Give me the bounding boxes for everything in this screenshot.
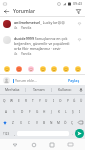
staticText: N xyxy=(50,121,53,125)
staticText: V xyxy=(36,121,38,125)
button[interactable]: B xyxy=(41,117,48,128)
button[interactable]: G xyxy=(34,106,41,117)
staticText: Y xyxy=(39,99,41,103)
button[interactable]: Like xyxy=(76,36,82,42)
button[interactable]: F xyxy=(26,106,34,117)
button[interactable]: Z xyxy=(9,117,17,128)
button[interactable]: Share xyxy=(75,8,82,15)
staticText: I xyxy=(53,99,55,103)
button[interactable]: I xyxy=(50,95,57,106)
button[interactable]: ?123 xyxy=(1,129,11,138)
button[interactable]: Ö xyxy=(62,117,69,128)
button[interactable]: Back xyxy=(3,8,10,15)
staticText: I xyxy=(79,110,81,114)
staticText: Ş xyxy=(72,110,74,114)
staticText: F xyxy=(29,110,31,114)
button[interactable]: Comma xyxy=(11,129,17,138)
staticText: Yorumlar xyxy=(13,8,36,15)
button[interactable] xyxy=(15,65,23,73)
staticText: L xyxy=(65,110,67,114)
button[interactable]: C xyxy=(25,117,33,128)
button[interactable]: H xyxy=(41,106,48,117)
staticText: ?123 xyxy=(3,132,10,136)
button[interactable]: J xyxy=(48,106,55,117)
button[interactable]: M xyxy=(55,117,62,128)
button[interactable] xyxy=(27,65,35,73)
staticText: Kullanıcı xyxy=(58,87,72,92)
staticText: P xyxy=(67,99,69,103)
button[interactable]: Ç xyxy=(69,117,76,128)
button[interactable]: Q xyxy=(0,95,8,106)
button[interactable]: anilmehmetsel_ Lucky be😍😍 xyxy=(0,17,85,33)
button[interactable]: V xyxy=(33,117,41,128)
button[interactable]: L xyxy=(62,106,69,117)
button[interactable]: Y xyxy=(36,95,43,106)
button[interactable]: X xyxy=(17,117,25,128)
button[interactable] xyxy=(3,65,11,73)
button[interactable]: Tamam xyxy=(26,85,51,94)
button[interactable]: S xyxy=(10,106,18,117)
button[interactable]: Paylaş xyxy=(66,77,82,84)
staticText: D xyxy=(21,110,24,114)
staticText: O xyxy=(59,99,62,103)
staticText: Yanıtla xyxy=(21,26,32,30)
staticText: U xyxy=(45,99,48,103)
staticText: R xyxy=(25,99,27,103)
button[interactable]: Keyboard xyxy=(66,140,75,149)
staticText: . xyxy=(72,131,73,136)
button[interactable]: W xyxy=(8,95,15,106)
button[interactable]: Voice input xyxy=(77,85,85,94)
button[interactable]: I xyxy=(76,106,83,117)
staticText: C xyxy=(28,121,31,125)
button[interactable]: A xyxy=(2,106,10,117)
button[interactable]: Back xyxy=(10,140,19,149)
button[interactable]: Shift xyxy=(0,117,9,128)
button[interactable]: Ü xyxy=(78,95,85,106)
staticText: anilmehmetsel_ Lucky be😍😍 xyxy=(14,20,65,25)
button[interactable]: R xyxy=(22,95,29,106)
staticText: , xyxy=(14,131,15,136)
staticText: Ğ xyxy=(73,99,76,103)
button[interactable] xyxy=(39,65,47,73)
button[interactable]: Merhaba xyxy=(0,85,25,94)
staticText: X xyxy=(20,121,22,125)
button[interactable]: U xyxy=(43,95,50,106)
button[interactable]: T xyxy=(29,95,36,106)
button[interactable] xyxy=(50,65,58,73)
staticText: Yorum ekle... xyxy=(15,78,37,83)
staticText: T xyxy=(32,99,34,103)
button[interactable]: D xyxy=(18,106,26,117)
button[interactable]: N xyxy=(48,117,55,128)
staticText: Tamam xyxy=(33,87,45,92)
button[interactable]: O xyxy=(57,95,64,106)
button[interactable]: E xyxy=(15,95,22,106)
staticText: E xyxy=(18,99,20,103)
staticText: B xyxy=(43,121,46,125)
button[interactable]: Like xyxy=(76,20,82,26)
button[interactable]: Recents xyxy=(47,140,56,149)
staticText: Z xyxy=(12,121,14,125)
staticText: H xyxy=(43,110,46,114)
staticText: W xyxy=(10,99,13,103)
staticText: J xyxy=(51,110,52,114)
button[interactable] xyxy=(74,65,82,73)
button[interactable] xyxy=(62,65,70,73)
button[interactable]: P xyxy=(64,95,71,106)
button[interactable]: Home xyxy=(29,140,38,149)
staticText: 4s xyxy=(14,26,18,30)
button[interactable]: Kullanıcı xyxy=(52,85,77,94)
button[interactable]: ducide9999 Sonuçlarınız en çok beğenilen… xyxy=(0,33,85,59)
staticText: Merhaba xyxy=(5,87,20,92)
staticText: 4s xyxy=(14,52,18,56)
staticText: 09:43 xyxy=(73,1,82,6)
button[interactable]: Backspace xyxy=(76,117,85,128)
staticText: A xyxy=(5,110,8,114)
button[interactable]: Ğ xyxy=(71,95,78,106)
staticText: K xyxy=(58,110,60,114)
button[interactable]: Ş xyxy=(69,106,76,117)
button[interactable]: K xyxy=(55,106,62,117)
staticText: M xyxy=(57,121,60,125)
button[interactable]: Send xyxy=(75,129,84,138)
